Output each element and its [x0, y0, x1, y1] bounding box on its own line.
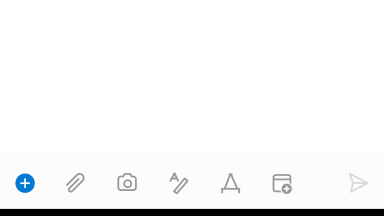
button[interactable]: Send — [337, 161, 381, 205]
button[interactable]: Camera — [105, 161, 149, 205]
button[interactable]: Add — [3, 161, 47, 205]
button[interactable]: Attach file — [53, 161, 97, 205]
button[interactable]: Markup — [157, 161, 201, 205]
button[interactable]: Format text — [209, 161, 253, 205]
button[interactable]: Add card — [260, 162, 304, 206]
